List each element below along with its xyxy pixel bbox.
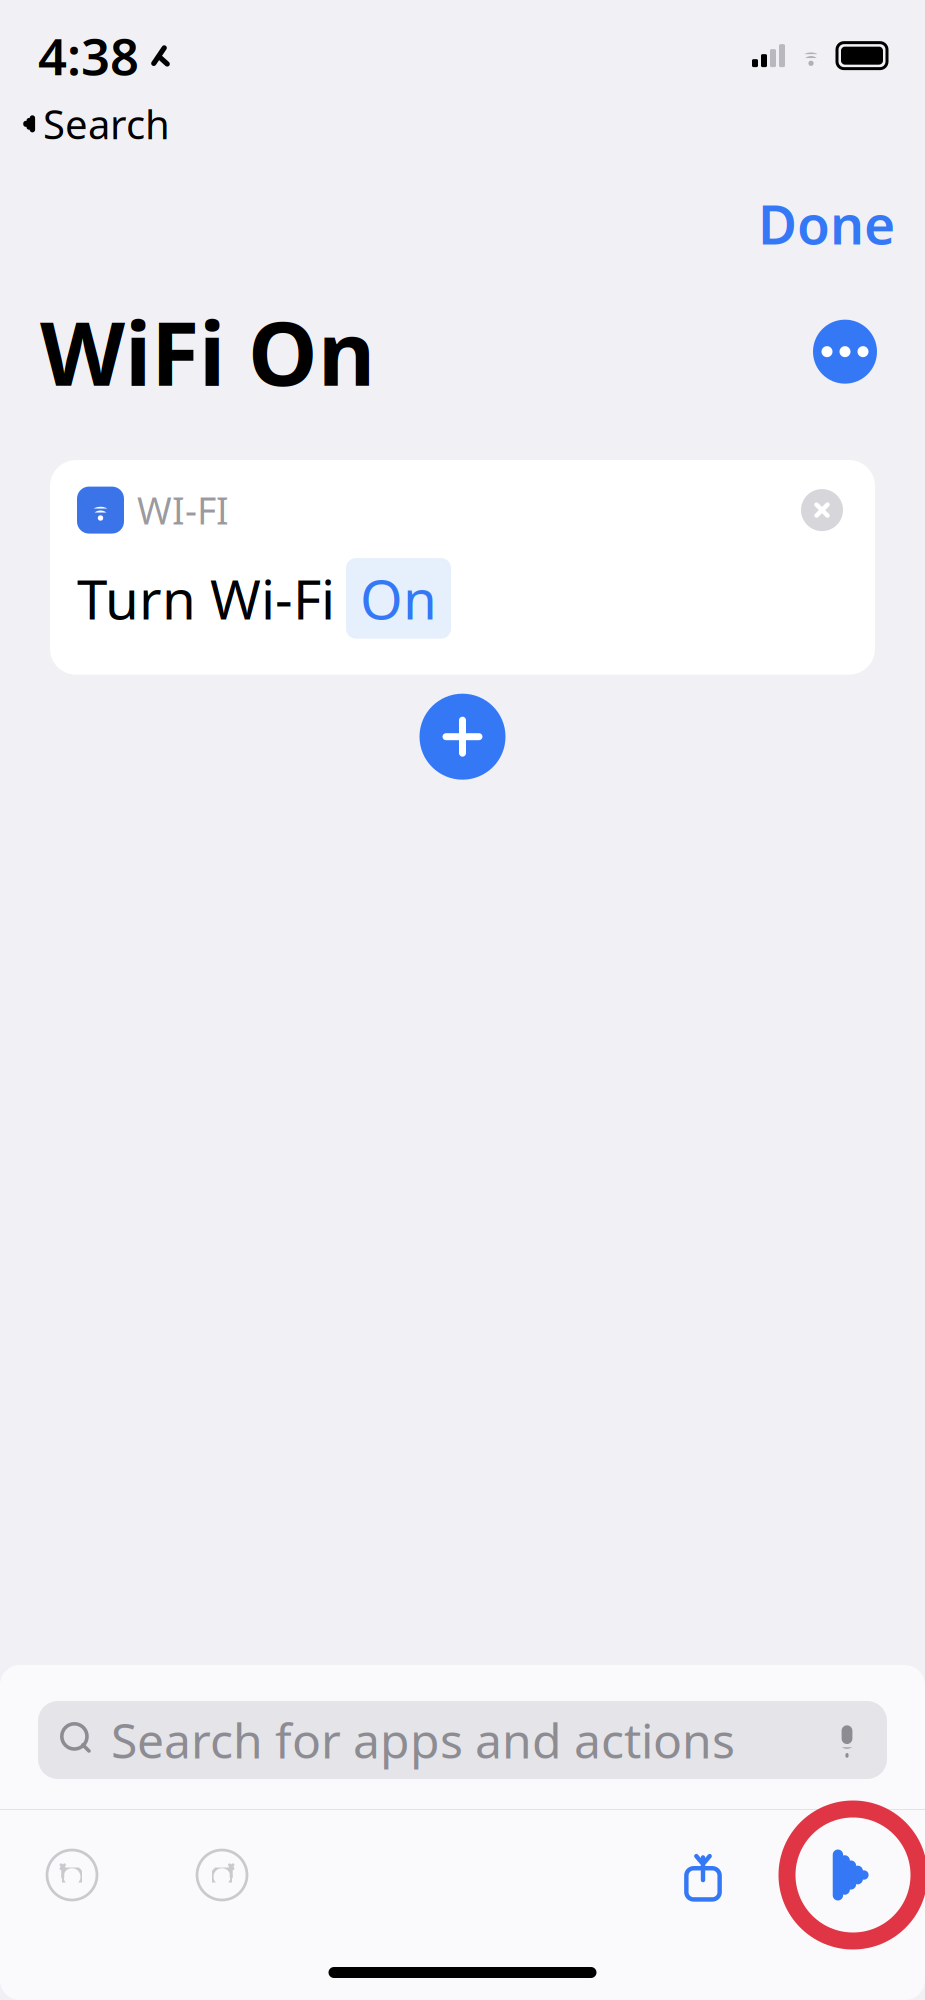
button[interactable]: Remove action (796, 484, 848, 536)
button[interactable]: Share (655, 1832, 751, 1918)
button[interactable]: Run shortcut (805, 1832, 901, 1918)
button[interactable]: Undo (24, 1832, 120, 1918)
button[interactable]: Search for apps and actions (38, 1701, 887, 1779)
staticText: Done (758, 188, 895, 259)
staticText: Search for apps and actions (111, 1708, 735, 1772)
button[interactable]: More options (805, 312, 885, 392)
button[interactable]: On (346, 558, 451, 639)
button[interactable]: Add action (410, 685, 514, 789)
button[interactable]: Search (0, 95, 188, 152)
staticText: Search (43, 97, 170, 150)
staticText: Turn Wi-Fi (77, 562, 335, 635)
staticText: WiFi On (40, 293, 375, 410)
staticText: On (360, 562, 437, 635)
button[interactable]: Done (728, 176, 925, 271)
staticText: 4:38 (38, 22, 139, 89)
staticText: WI-FI (137, 485, 229, 535)
button[interactable]: Redo (174, 1832, 270, 1918)
